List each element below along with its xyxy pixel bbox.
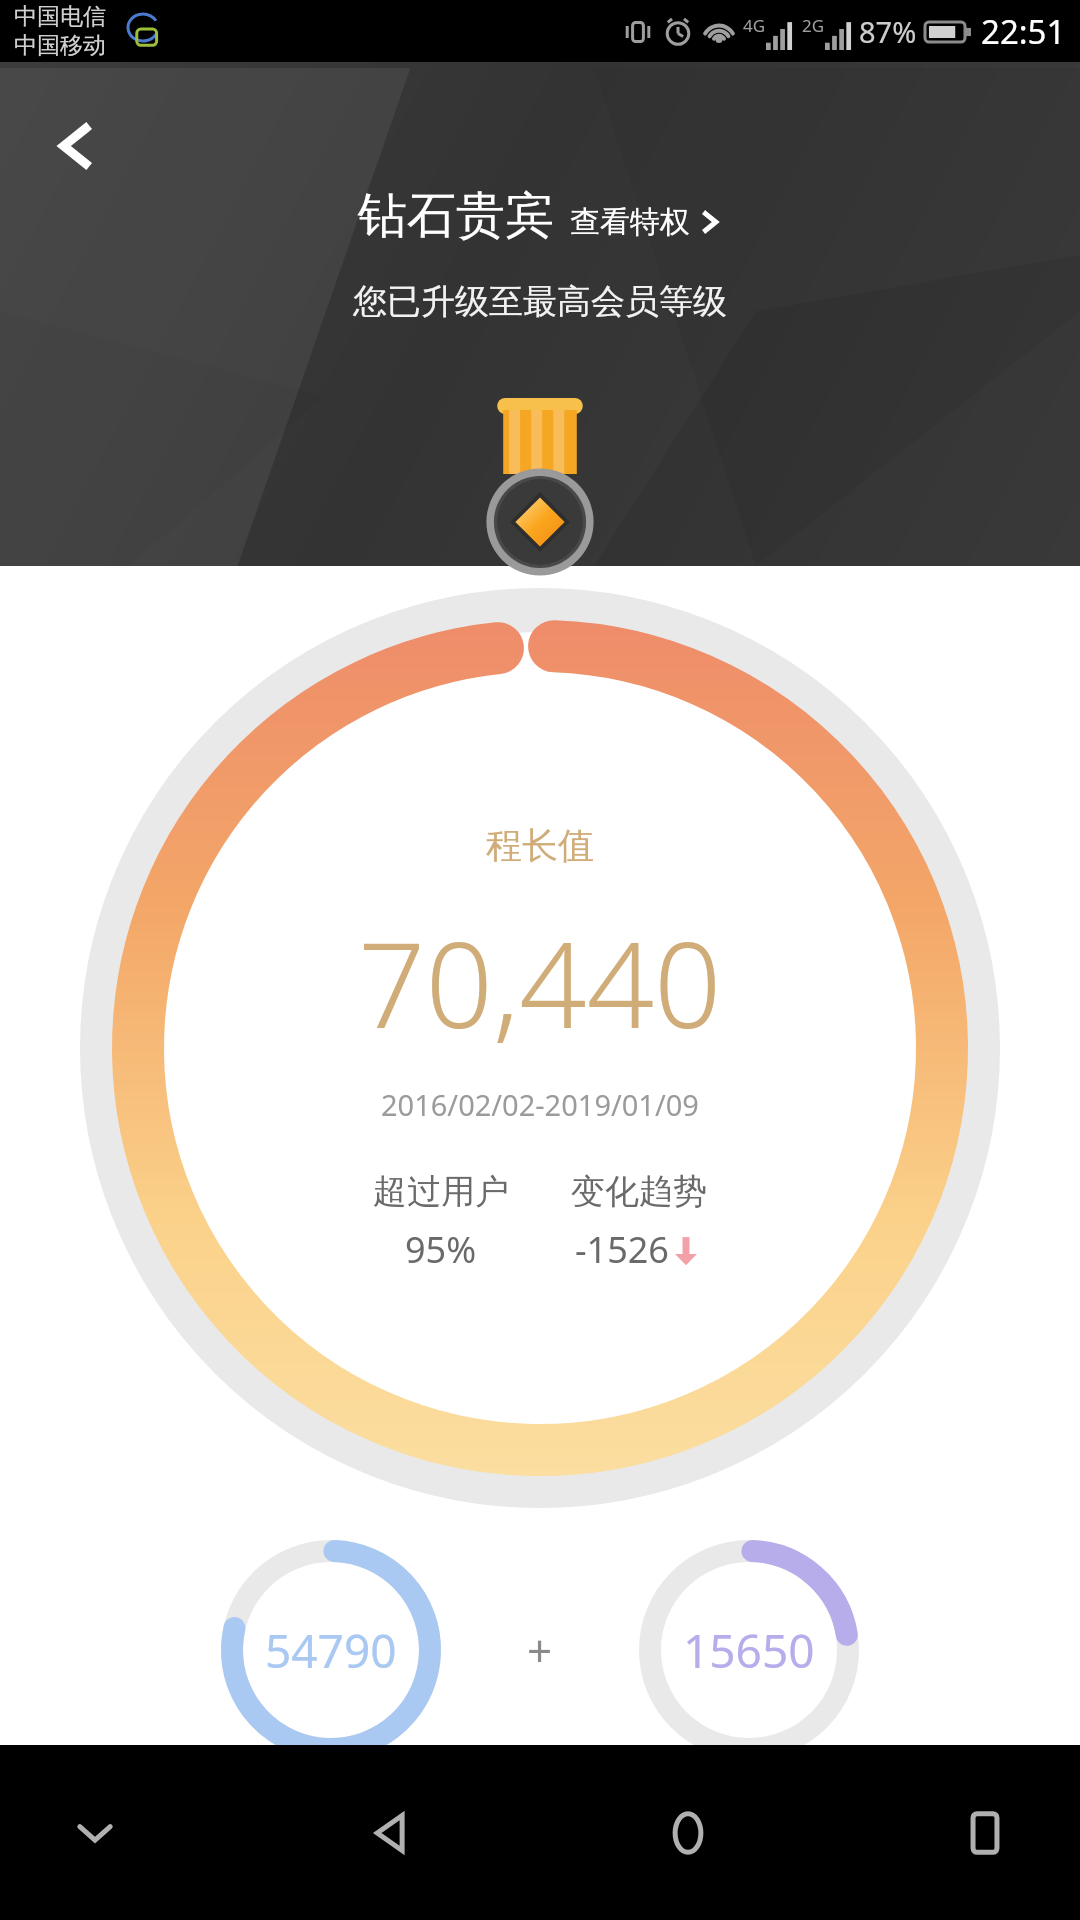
button[interactable]: Back bbox=[28, 98, 124, 194]
staticText: 2G bbox=[802, 14, 825, 37]
staticText: -1526 bbox=[575, 1225, 669, 1274]
staticText: 中国电信 bbox=[14, 2, 106, 31]
staticText: 70,440 bbox=[358, 902, 722, 1063]
staticText: 15650 bbox=[683, 1619, 815, 1682]
staticText: 变化趋势 bbox=[571, 1170, 707, 1213]
staticText: 查看特权 bbox=[570, 203, 690, 241]
staticText: 95% bbox=[405, 1225, 477, 1274]
button[interactable]: 54790 bbox=[221, 1540, 441, 1760]
button[interactable]: Recents bbox=[930, 1778, 1040, 1888]
staticText: + bbox=[527, 1620, 553, 1680]
staticText: 4G bbox=[743, 14, 766, 37]
staticText: 超过用户 bbox=[373, 1170, 509, 1213]
staticText: 2016/02/02-2019/01/09 bbox=[381, 1085, 699, 1124]
staticText: 22:51 bbox=[981, 9, 1066, 54]
button[interactable]: 15650 bbox=[639, 1540, 859, 1760]
staticText: 程长值 bbox=[486, 823, 594, 868]
staticText: 钻石贵宾 bbox=[358, 185, 554, 247]
staticText: 87% bbox=[859, 12, 917, 51]
button[interactable]: Hide bbox=[40, 1778, 150, 1888]
staticText: 54790 bbox=[265, 1619, 397, 1682]
staticText: 您已升级至最高会员等级 bbox=[0, 280, 1080, 323]
button[interactable]: Back bbox=[337, 1778, 447, 1888]
button[interactable]: 查看特权 bbox=[570, 203, 722, 241]
button[interactable]: Home bbox=[633, 1778, 743, 1888]
staticText: 中国移动 bbox=[14, 31, 106, 60]
